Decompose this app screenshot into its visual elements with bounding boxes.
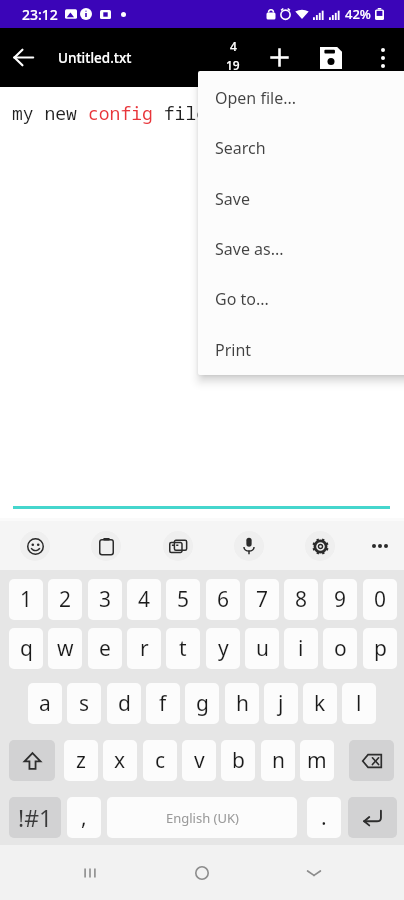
button[interactable]: t xyxy=(166,628,200,669)
button[interactable]: Recent apps xyxy=(66,845,114,900)
staticText: m xyxy=(307,746,327,775)
button[interactable]: s xyxy=(67,683,101,724)
staticText: , xyxy=(81,803,87,832)
button[interactable]: r xyxy=(127,628,161,669)
button[interactable]: q xyxy=(9,628,43,669)
button[interactable]: Symbols xyxy=(9,797,61,838)
button[interactable]: New file xyxy=(257,28,301,87)
button[interactable]: , xyxy=(67,797,101,838)
button[interactable]: Save xyxy=(309,28,353,87)
button[interactable]: Enter xyxy=(348,797,397,838)
button[interactable]: Save as... xyxy=(198,224,404,274)
button[interactable]: o xyxy=(323,628,357,669)
staticText: u xyxy=(256,634,269,663)
staticText: l xyxy=(356,689,362,718)
button[interactable]: Stickers xyxy=(163,531,193,561)
staticText: e xyxy=(99,634,111,663)
staticText: r xyxy=(140,634,149,663)
staticText: k xyxy=(314,689,326,718)
button[interactable]: 4 xyxy=(127,579,161,620)
button[interactable]: Back xyxy=(2,28,44,87)
button[interactable]: 5 xyxy=(166,579,200,620)
staticText: b xyxy=(232,746,245,775)
button[interactable]: l xyxy=(342,683,376,724)
button[interactable]: e xyxy=(88,628,122,669)
staticText: d xyxy=(118,689,131,718)
staticText: a xyxy=(39,689,51,718)
button[interactable]: Home xyxy=(178,845,226,900)
button[interactable]: k xyxy=(303,683,337,724)
staticText: 7 xyxy=(256,585,269,614)
button[interactable]: Print xyxy=(198,325,404,375)
staticText: Print xyxy=(215,339,252,361)
button[interactable]: Keyboard settings xyxy=(305,531,335,561)
staticText: t xyxy=(179,634,187,663)
button[interactable]: Hide keyboard xyxy=(290,845,338,900)
staticText: o xyxy=(334,634,347,663)
button[interactable]: v xyxy=(182,740,216,781)
staticText: Open file... xyxy=(215,87,297,109)
button[interactable]: Open file... xyxy=(198,73,404,123)
button[interactable]: d xyxy=(107,683,141,724)
button[interactable]: m xyxy=(300,740,334,781)
staticText: q xyxy=(20,634,33,663)
button[interactable]: 7 xyxy=(245,579,279,620)
staticText: y xyxy=(218,634,229,663)
staticText: n xyxy=(272,746,285,775)
button[interactable]: f xyxy=(146,683,180,724)
button[interactable]: Emoji xyxy=(20,531,50,561)
button[interactable]: i xyxy=(284,628,318,669)
staticText: . xyxy=(321,803,327,832)
button[interactable]: 2 xyxy=(48,579,82,620)
staticText: v xyxy=(194,746,205,775)
staticText: 23:12 xyxy=(22,5,58,24)
button[interactable]: n xyxy=(261,740,295,781)
button[interactable]: 0 xyxy=(363,579,397,620)
button[interactable]: w xyxy=(48,628,82,669)
button[interactable]: . xyxy=(307,797,341,838)
staticText: Save xyxy=(215,188,250,210)
button[interactable]: Go to... xyxy=(198,274,404,324)
button[interactable]: Clipboard xyxy=(91,531,121,561)
button[interactable]: h xyxy=(225,683,259,724)
staticText: 9 xyxy=(334,585,347,614)
staticText: config xyxy=(88,101,153,126)
staticText: j xyxy=(278,689,284,718)
staticText: 5 xyxy=(177,585,190,614)
staticText: 2 xyxy=(59,585,72,614)
button[interactable]: c xyxy=(143,740,177,781)
staticText: c xyxy=(155,746,166,775)
button[interactable]: Space xyxy=(107,797,297,838)
staticText: g xyxy=(196,689,209,718)
button[interactable]: p xyxy=(363,628,397,669)
button[interactable]: More options xyxy=(362,28,404,87)
button[interactable]: u xyxy=(245,628,279,669)
button[interactable]: a xyxy=(28,683,62,724)
button[interactable]: Line and column xyxy=(216,26,250,85)
staticText: p xyxy=(374,634,387,663)
button[interactable]: j xyxy=(264,683,298,724)
button[interactable]: b xyxy=(221,740,255,781)
button[interactable]: Save xyxy=(198,174,404,224)
button[interactable]: g xyxy=(185,683,219,724)
staticText: 6 xyxy=(217,585,230,614)
button[interactable]: 8 xyxy=(284,579,318,620)
staticText: 0 xyxy=(374,585,387,614)
staticText: Untitled.txt xyxy=(58,49,132,67)
button[interactable]: 6 xyxy=(206,579,240,620)
button[interactable]: 1 xyxy=(9,579,43,620)
button[interactable]: Shift xyxy=(9,740,55,781)
button[interactable]: z xyxy=(64,740,98,781)
button[interactable]: Backspace xyxy=(349,740,394,781)
button[interactable]: Voice input xyxy=(234,531,264,561)
button[interactable]: Search xyxy=(198,123,404,173)
staticText: Save as... xyxy=(215,238,284,260)
staticText: Go to... xyxy=(215,288,269,310)
staticText: 19 xyxy=(226,57,240,73)
staticText: w xyxy=(57,634,74,663)
button[interactable]: 9 xyxy=(323,579,357,620)
button[interactable]: More xyxy=(365,531,395,561)
button[interactable]: x xyxy=(103,740,137,781)
button[interactable]: 3 xyxy=(88,579,122,620)
button[interactable]: y xyxy=(206,628,240,669)
